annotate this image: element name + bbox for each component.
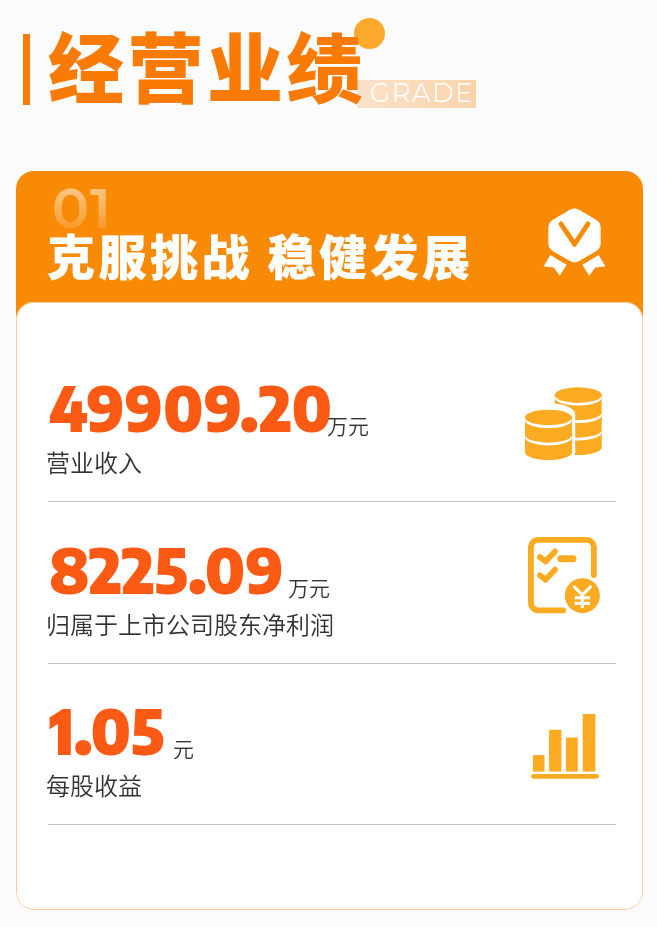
staticText: 经营业绩 [48,9,366,119]
button[interactable]: Net profit [528,537,600,613]
button[interactable]: 8225.09 [16,502,643,664]
staticText: 49909.20 [49,368,333,445]
staticText: 营业收入 [46,444,142,479]
button[interactable]: 49909.20 [16,340,643,502]
staticText: 8225.09 [49,530,284,607]
button[interactable]: Award badge [543,206,606,276]
button[interactable]: Revenue [525,385,603,459]
staticText: 01 [52,175,112,242]
staticText: 元 [173,733,194,763]
staticText: 1.05 [49,691,165,768]
staticText: 每股收益 [46,767,142,802]
button[interactable]: 1.05 [16,663,643,825]
staticText: 万元 [327,410,369,440]
staticText: 万元 [288,572,330,602]
staticText: 克服挑战 稳健发展 [47,219,474,289]
button[interactable]: Earnings per share [531,714,599,780]
staticText: 归属于上市公司股东净利润 [46,606,334,641]
staticText: GRADE [370,77,475,109]
